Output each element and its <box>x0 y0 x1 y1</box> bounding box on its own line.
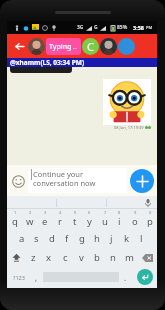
button[interactable]: 8 <box>112 209 127 229</box>
staticText: @xhamm(LS, 03:34 PM) <box>10 58 85 67</box>
staticText: m <box>125 251 134 264</box>
staticText: 6 <box>88 210 91 215</box>
staticText: 1 <box>14 210 17 215</box>
button[interactable]: Profile photo <box>100 38 117 55</box>
staticText: 0 <box>149 210 152 215</box>
button[interactable]: 2 <box>22 209 37 229</box>
button[interactable]: l <box>134 229 149 248</box>
staticText: 5 <box>74 210 77 215</box>
staticText: 3 <box>44 210 47 215</box>
staticText: Continue your conversation now <box>33 169 127 189</box>
staticText: p <box>147 215 153 228</box>
staticText: C <box>87 39 94 54</box>
button[interactable]: Typing <box>46 38 81 55</box>
button[interactable]: , <box>30 267 43 287</box>
staticText: e <box>42 215 48 228</box>
button[interactable]: k <box>119 229 134 248</box>
staticText: h <box>94 232 100 245</box>
button[interactable]: 7 <box>97 209 112 229</box>
staticText: n <box>110 251 116 264</box>
staticText: w <box>26 215 34 228</box>
staticText: ?123 <box>13 274 25 281</box>
staticText: b <box>94 251 100 264</box>
staticText: u <box>102 215 108 228</box>
staticText: x <box>46 251 52 264</box>
staticText: ... <box>73 44 78 51</box>
button[interactable]: Contact C <box>82 38 99 55</box>
button[interactable]: Contact <box>118 38 135 55</box>
button[interactable] <box>103 79 151 125</box>
button[interactable]: f <box>59 229 74 248</box>
button[interactable]: c <box>57 248 73 267</box>
staticText: l <box>140 232 143 245</box>
button[interactable]: Emoji <box>10 173 26 189</box>
staticText: . <box>124 272 127 283</box>
button[interactable]: Profile photo <box>28 38 45 55</box>
button[interactable]: 3 <box>37 209 52 229</box>
button[interactable]: ?123 <box>7 267 30 287</box>
button[interactable]: s <box>29 229 44 248</box>
staticText: f <box>65 232 69 245</box>
staticText: s <box>34 232 39 245</box>
staticText: G <box>94 24 98 31</box>
staticText: z <box>31 251 36 264</box>
button[interactable]: Enter <box>137 269 153 285</box>
staticText: g <box>79 232 85 245</box>
button[interactable]: j <box>104 229 119 248</box>
button[interactable]: m <box>121 248 137 267</box>
staticText: y <box>87 215 92 228</box>
button[interactable]: a <box>14 229 29 248</box>
button[interactable]: v <box>73 248 89 267</box>
staticText: i <box>118 215 121 228</box>
staticText: j <box>110 232 113 245</box>
staticText: d <box>49 232 55 245</box>
button[interactable]: Shift <box>7 248 26 267</box>
button[interactable]: Back <box>12 39 26 53</box>
staticText: r <box>58 215 62 228</box>
button[interactable]: Continue your conversation now <box>28 168 127 193</box>
button[interactable]: . <box>119 267 132 287</box>
button[interactable]: z <box>26 248 41 267</box>
button[interactable]: b <box>89 248 105 267</box>
staticText: 3:58 <box>133 24 144 31</box>
staticText: 2 <box>29 210 32 215</box>
staticText: 9 <box>134 210 137 215</box>
staticText: 7 <box>104 210 107 215</box>
button[interactable]: Add attachment <box>130 169 154 193</box>
button[interactable]: Voice input <box>142 197 154 209</box>
staticText: , <box>35 272 38 283</box>
staticText: v <box>79 251 84 264</box>
button[interactable]: x <box>41 248 57 267</box>
button[interactable]: 4 <box>52 209 67 229</box>
button[interactable]: d <box>44 229 59 248</box>
staticText: k <box>124 232 130 245</box>
staticText: 85% <box>117 24 128 31</box>
staticText: PM <box>146 25 153 30</box>
staticText: c <box>63 251 68 264</box>
button[interactable]: h <box>89 229 104 248</box>
button[interactable]: g <box>74 229 89 248</box>
button[interactable]: n <box>105 248 121 267</box>
staticText: t <box>73 215 77 228</box>
button[interactable]: 0 <box>142 209 157 229</box>
staticText: 3G <box>77 24 84 31</box>
button[interactable]: 1 <box>7 209 22 229</box>
staticText: 4 <box>59 210 62 215</box>
staticText: 8 <box>118 210 121 215</box>
button[interactable]: 9 <box>127 209 142 229</box>
staticText: 08 Jun, 17:19:39 <box>114 125 144 130</box>
staticText: o <box>132 215 138 228</box>
staticText: a <box>19 232 25 245</box>
button[interactable]: Backspace <box>137 248 157 267</box>
button[interactable]: 6 <box>82 209 97 229</box>
staticText: Typing <box>49 42 72 52</box>
staticText: q <box>12 215 18 228</box>
button[interactable]: 5 <box>67 209 82 229</box>
